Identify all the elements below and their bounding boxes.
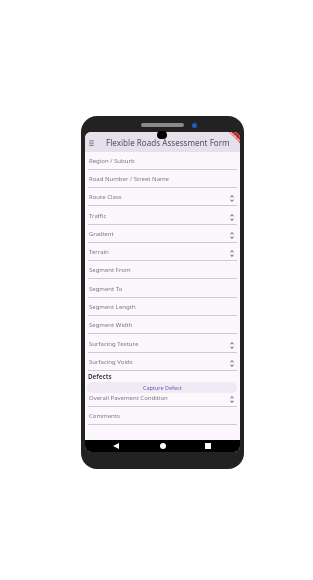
button[interactable]: Surfacing Voids: [85, 353, 240, 371]
button[interactable]: Road Number / Street Name: [85, 170, 240, 188]
staticText: Flexible Roads Assessment Form: [106, 137, 230, 148]
staticText: Terrain: [89, 248, 109, 256]
button[interactable]: Segment To: [85, 280, 240, 298]
button[interactable]: Open navigation menu: [86, 137, 97, 148]
button[interactable]: Route Class: [85, 188, 240, 206]
button[interactable]: Gradient: [85, 225, 240, 243]
staticText: Comments: [89, 412, 120, 420]
button[interactable]: Home: [157, 440, 169, 452]
button[interactable]: Terrain: [85, 243, 240, 261]
staticText: Overall Pavement Condition: [89, 394, 168, 402]
button[interactable]: Capture Defect: [87, 382, 237, 393]
button[interactable]: Region / Suburb: [85, 152, 240, 170]
staticText: Segment From: [89, 266, 131, 274]
staticText: Surfacing Voids: [89, 358, 133, 366]
staticText: Segment Length: [89, 303, 136, 311]
staticText: Route Class: [89, 193, 122, 201]
button[interactable]: Comments: [85, 407, 240, 425]
button[interactable]: Recent apps: [202, 440, 214, 452]
button[interactable]: Segment From: [85, 261, 240, 279]
staticText: Surfacing Texture: [89, 340, 139, 348]
button[interactable]: Overall Pavement Condition: [85, 389, 240, 407]
staticText: Road Number / Street Name: [89, 175, 169, 183]
staticText: Segment To: [89, 285, 123, 293]
button[interactable]: Surfacing Texture: [85, 335, 240, 353]
button[interactable]: Segment Width: [85, 316, 240, 334]
staticText: Gradient: [89, 230, 114, 238]
staticText: Traffic: [89, 212, 107, 220]
staticText: Capture Defect: [143, 384, 182, 391]
button[interactable]: Traffic: [85, 207, 240, 225]
button[interactable]: Back: [110, 440, 122, 452]
staticText: Segment Width: [89, 321, 133, 329]
staticText: Defects: [88, 372, 112, 381]
button[interactable]: Segment Length: [85, 298, 240, 316]
staticText: Region / Suburb: [89, 157, 135, 165]
